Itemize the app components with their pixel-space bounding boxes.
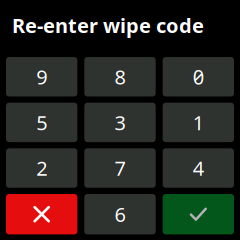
staticText: 0 [193, 63, 204, 90]
button[interactable]: 7 [84, 148, 156, 188]
button[interactable]: 5 [6, 103, 77, 142]
staticText: Re-enter wipe code [12, 12, 204, 39]
button[interactable]: 8 [84, 57, 156, 96]
staticText: 8 [114, 63, 125, 90]
button[interactable]: 4 [163, 148, 234, 188]
button[interactable]: 2 [6, 148, 77, 188]
button[interactable]: 3 [84, 103, 156, 142]
button[interactable]: 9 [6, 57, 77, 96]
staticText: 3 [114, 109, 125, 136]
button[interactable]: 1 [163, 103, 234, 142]
staticText: 2 [36, 155, 47, 181]
staticText: 4 [193, 155, 204, 181]
button[interactable]: 6 [84, 194, 156, 234]
button[interactable]: Cancel [6, 194, 77, 234]
button[interactable]: Confirm [163, 194, 234, 234]
button[interactable]: 0 [163, 57, 234, 96]
staticText: 6 [114, 201, 125, 227]
staticText: 1 [193, 109, 204, 136]
staticText: 7 [114, 155, 125, 181]
staticText: 9 [36, 63, 47, 90]
staticText: 5 [36, 109, 47, 136]
